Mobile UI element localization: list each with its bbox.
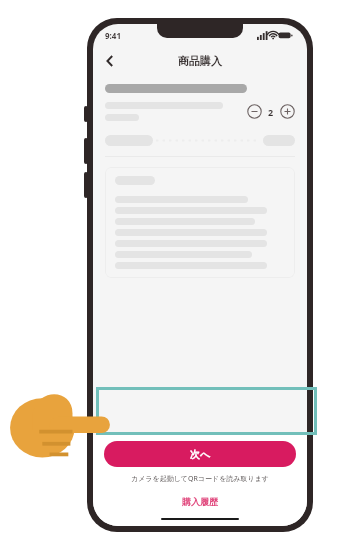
button[interactable]: Increase [280,104,295,119]
staticText: 購入履歴 [182,496,218,507]
button[interactable]: Back [99,50,121,72]
staticText: 次へ [190,448,211,461]
button[interactable]: 購入履歴 [180,494,220,509]
other: Pointing hand [8,386,112,462]
staticText: 9:41 [105,30,121,41]
staticText: 2 [268,106,274,118]
button[interactable]: Decrease [247,104,262,119]
staticText: カメラを起動してQRコードを読み取ります [131,474,269,484]
button[interactable]: 次へ [104,441,296,467]
staticText: 商品購入 [178,54,222,68]
